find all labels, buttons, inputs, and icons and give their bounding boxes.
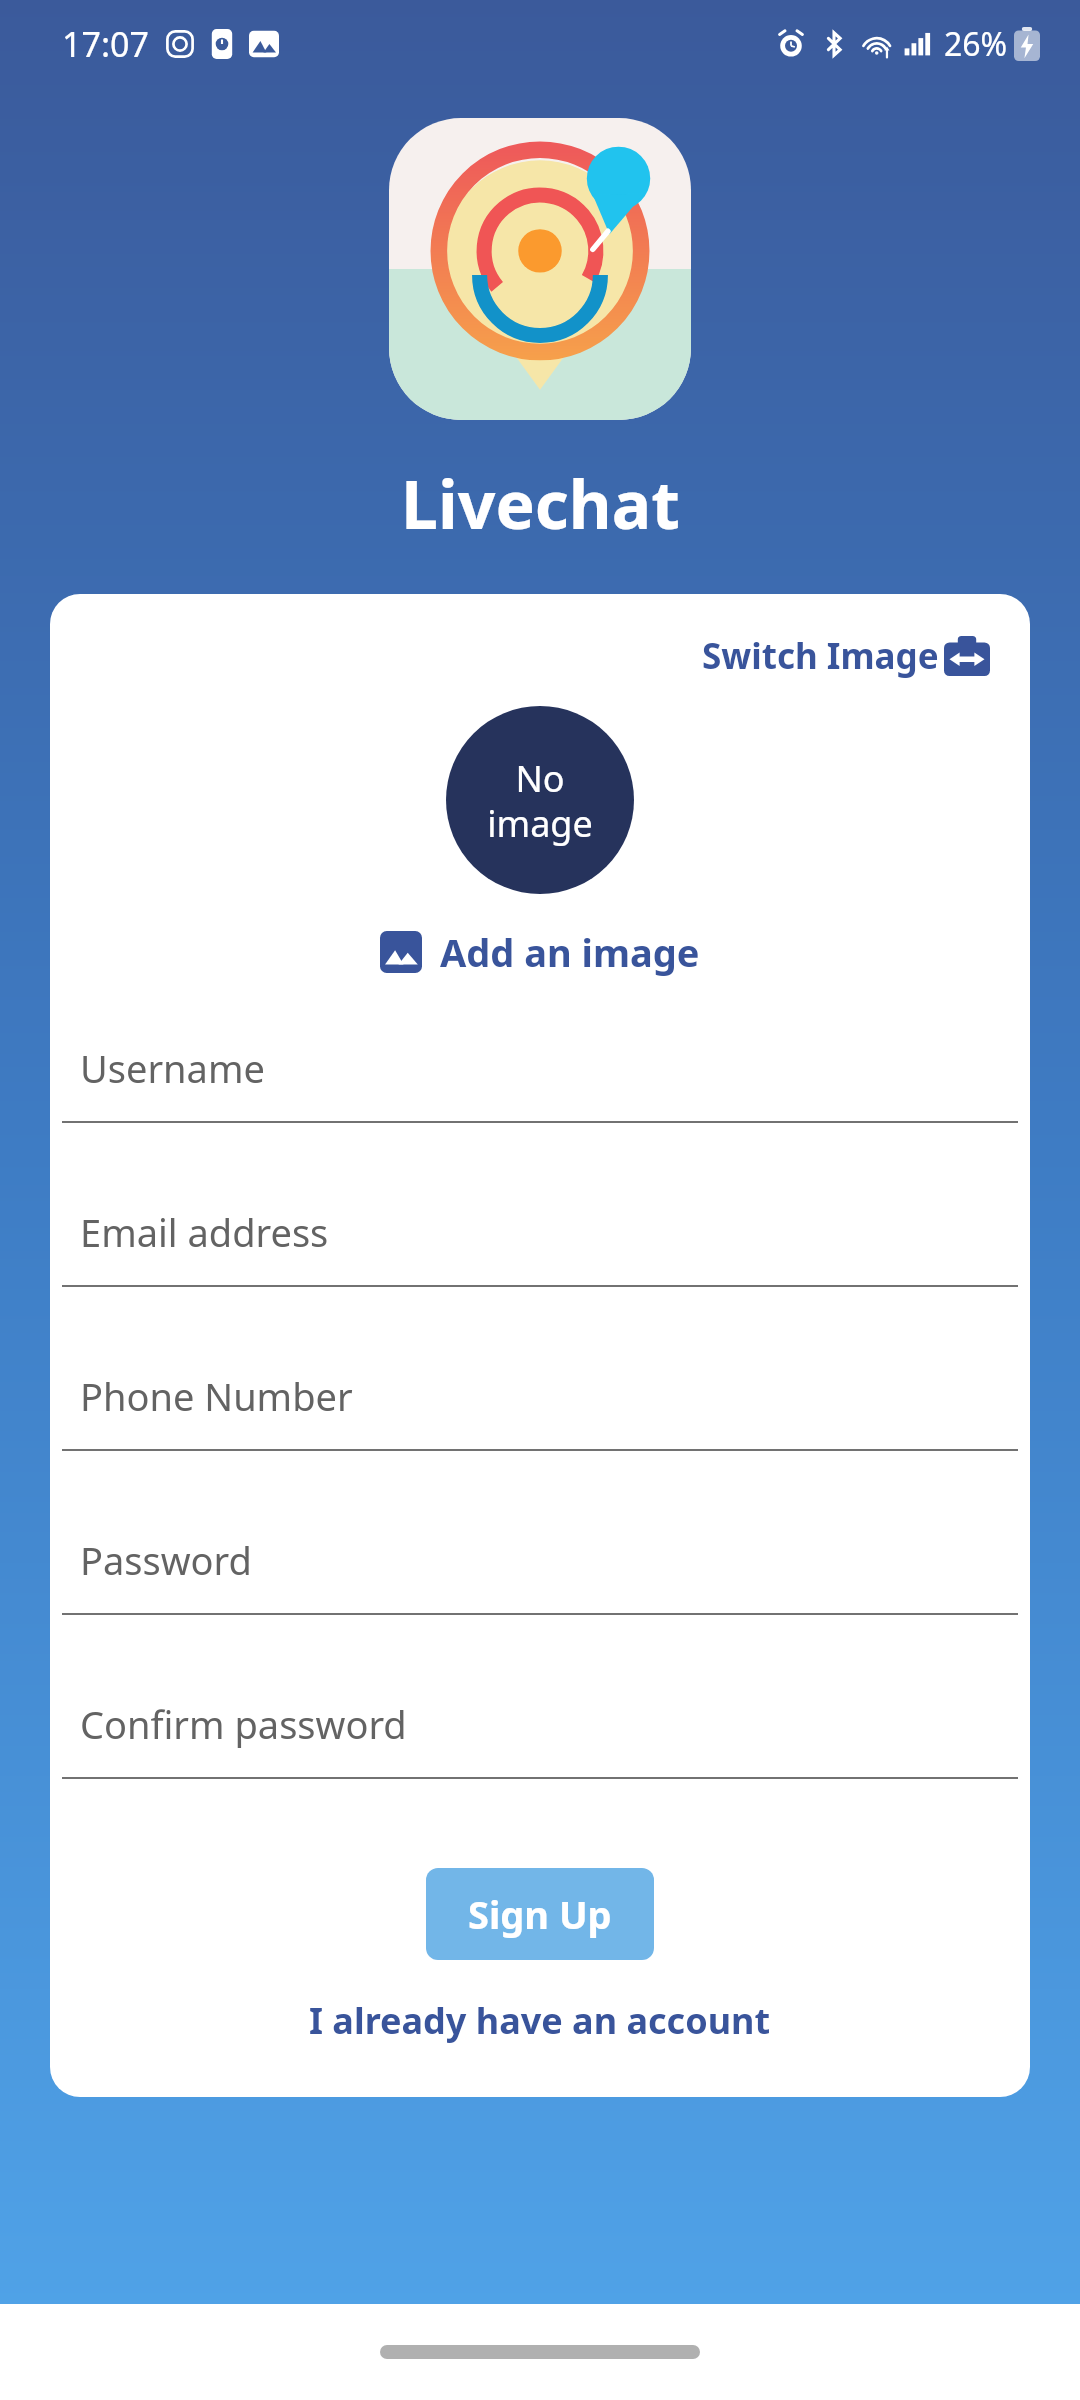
staticText: No image (487, 754, 593, 847)
button[interactable]: Username (50, 1014, 1030, 1178)
button[interactable]: Password (50, 1506, 1030, 1670)
staticText: 17:07 (62, 21, 149, 67)
staticText: Confirm password (80, 1698, 407, 1750)
button[interactable]: No image (446, 706, 634, 894)
staticText: Add an image (440, 926, 700, 978)
staticText: Phone Number (80, 1370, 353, 1422)
other: Switch Image (944, 636, 990, 676)
button[interactable]: I already have an account (297, 1988, 783, 2053)
staticText: 26% (944, 22, 1008, 66)
button[interactable]: Confirm password (50, 1670, 1030, 1834)
staticText: I already have an account (309, 1996, 771, 2045)
button[interactable]: Sign Up (426, 1868, 654, 1960)
button[interactable]: Add an image (372, 920, 708, 984)
staticText: Sign Up (468, 1888, 612, 1940)
staticText: Switch Image (702, 632, 939, 680)
button[interactable]: Switch Image (696, 624, 996, 688)
staticText: Password (80, 1534, 252, 1586)
button[interactable]: Phone Number (50, 1342, 1030, 1506)
staticText: Livechat (401, 458, 680, 548)
button[interactable]: Email address (50, 1178, 1030, 1342)
staticText: Username (80, 1042, 265, 1094)
staticText: Email address (80, 1206, 329, 1258)
